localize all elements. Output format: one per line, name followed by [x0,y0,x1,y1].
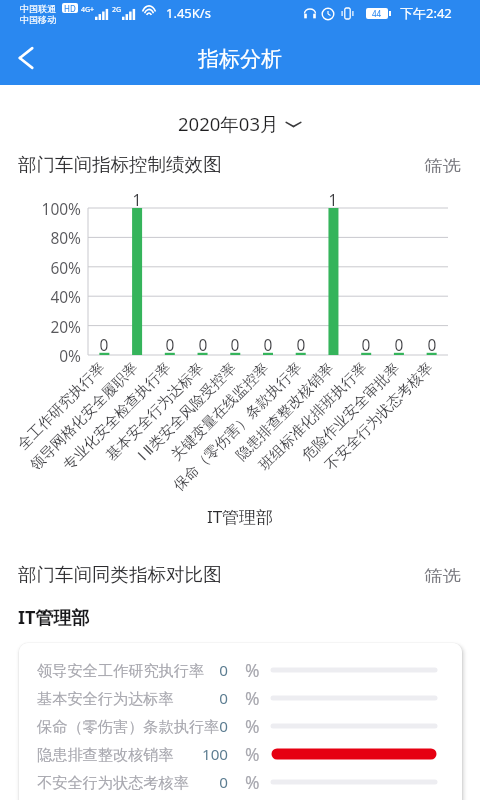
staticText: 班组标准化排班执行率 [255,359,370,474]
staticText: 80% [21,227,81,248]
staticText: 不安全行为状态考核率 [321,359,436,474]
button[interactable]: 2020年03月 [168,107,312,140]
staticText: Ⅰ Ⅱ类安全风险受控率 [133,357,240,464]
staticText: % [245,686,260,710]
staticText: 0 [351,334,381,355]
staticText: 1.45K/s [166,4,211,22]
staticText: 0% [21,345,81,366]
staticText: 基本安全行为达标率 [37,689,174,708]
button[interactable]: 保命（零伤害）条款执行率 [19,712,462,740]
button[interactable]: 隐患排查整改核销率 [19,740,462,768]
button[interactable]: 不安全行为状态考核率 [19,768,462,796]
staticText: 0 [168,660,228,681]
staticText: 0 [188,334,218,355]
staticText: % [245,714,260,738]
staticText: % [245,742,260,766]
button[interactable]: Back [3,36,47,80]
staticText: 中国联通 [20,3,56,14]
staticText: 40% [21,286,81,307]
staticText: 危险作业安全审批率 [298,359,403,464]
staticText: 2G [112,5,122,15]
staticText: 中国移动 [20,14,56,25]
staticText: 保命（零伤害）条款执行率 [170,359,305,494]
staticText: 专业化安全检查执行率 [59,359,174,474]
staticText: 筛选 [424,565,461,583]
staticText: 2020年03月 [178,111,279,136]
staticText: 基本安全行为达标率 [102,359,207,464]
staticText: 20% [21,316,81,337]
staticText: 0 [89,334,119,355]
staticText: % [245,770,260,794]
staticText: 4G+ [81,5,95,15]
staticText: 1 [318,189,348,210]
staticText: 关键变量在线监控率 [167,359,272,464]
staticText: 领导安全工作研究执行率 [37,661,205,680]
staticText: 0 [286,334,316,355]
staticText: 44 [372,8,382,19]
staticText: IT管理部 [0,505,480,528]
button[interactable]: 基本安全行为达标率 [19,684,462,712]
staticText: 0 [168,772,228,793]
staticText: 0 [155,334,185,355]
staticText: 指标分析 [198,46,282,72]
button[interactable]: 领导安全工作研究执行率 [19,656,462,684]
staticText: 0 [220,334,250,355]
button[interactable]: 筛选 [410,151,480,177]
staticText: 1 [122,189,152,210]
staticText: 下午2:42 [400,4,452,22]
staticText: 部门车间同类指标对比图 [18,563,222,586]
staticText: HD [64,3,76,13]
staticText: 领导网格化安全履职率 [26,359,141,474]
staticText: 0 [253,334,283,355]
staticText: 部门车间指标控制绩效图 [18,153,222,176]
staticText: 100 [168,744,228,765]
staticText: 0 [168,688,228,709]
staticText: 隐患排查整改核销率 [232,359,337,464]
staticText: 全工作研究执行率 [14,359,108,453]
staticText: 60% [21,257,81,278]
staticText: 0 [168,716,228,737]
staticText: 0 [417,334,447,355]
staticText: 筛选 [424,155,461,173]
staticText: 保命（零伤害）条款执行率 [37,717,220,736]
staticText: 隐患排查整改核销率 [37,745,174,764]
staticText: % [245,658,260,682]
staticText: 100% [21,198,81,219]
staticText: IT管理部 [18,605,90,630]
staticText: 不安全行为状态考核率 [37,773,189,792]
staticText: 0 [384,334,414,355]
button[interactable]: 筛选 [410,561,480,587]
